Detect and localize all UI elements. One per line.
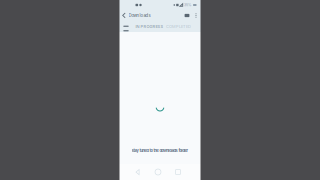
button[interactable]: Home — [152, 164, 163, 179]
button[interactable]: Back — [120, 10, 127, 21]
staticText: 35% — [184, 3, 192, 7]
staticText: Downloads — [128, 13, 150, 18]
button[interactable]: More options — [193, 10, 198, 21]
button[interactable]: IN PROGRESS — [135, 21, 164, 32]
staticText: IN PROGRESS — [135, 24, 163, 29]
button[interactable]: Cast — [183, 10, 190, 21]
button[interactable]: Back — [132, 164, 143, 179]
staticText: stay tuned to the downloads folder — [131, 148, 188, 153]
button[interactable]: COMPLETED — [164, 21, 193, 32]
button[interactable]: Sort — [122, 21, 130, 32]
button[interactable]: Recent apps — [172, 164, 183, 179]
staticText: COMPLETED — [166, 24, 191, 29]
